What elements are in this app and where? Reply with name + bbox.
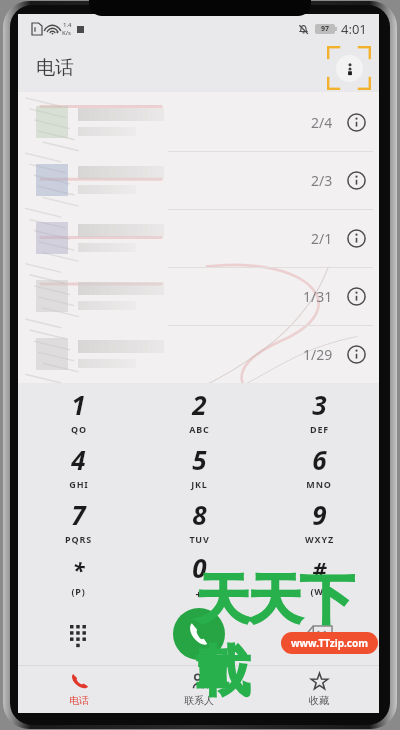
staticText: 9 bbox=[312, 497, 327, 532]
button[interactable]: Call details bbox=[345, 343, 367, 365]
staticText: 2/4 bbox=[311, 113, 333, 132]
button[interactable]: 2/1 bbox=[18, 209, 379, 267]
staticText: 4 bbox=[71, 442, 86, 477]
staticText: 2/1 bbox=[311, 229, 333, 248]
staticText: DEF bbox=[310, 423, 329, 435]
button[interactable]: Keypad bbox=[18, 603, 139, 665]
button[interactable]: Call details bbox=[345, 169, 367, 191]
staticText: JKL bbox=[191, 478, 208, 490]
staticText: WXYZ bbox=[305, 533, 334, 545]
staticText: 6 bbox=[312, 442, 327, 477]
button[interactable]: Call bbox=[139, 603, 259, 665]
button[interactable]: Call details bbox=[345, 111, 367, 133]
staticText: MNO bbox=[306, 478, 332, 490]
button[interactable]: Delete bbox=[259, 603, 379, 665]
button[interactable]: 2/3 bbox=[18, 151, 379, 209]
button[interactable]: 2/4 bbox=[18, 92, 379, 151]
staticText: PQRS bbox=[65, 533, 92, 545]
button[interactable]: 2 bbox=[139, 383, 259, 438]
button[interactable]: Call details bbox=[345, 227, 367, 249]
button[interactable]: 1/31 bbox=[18, 267, 379, 325]
button[interactable]: 3 bbox=[259, 383, 379, 438]
button[interactable]: Call details bbox=[345, 285, 367, 307]
staticText: 2 bbox=[192, 387, 207, 422]
button[interactable]: 1/29 bbox=[18, 325, 379, 383]
staticText: 联系人 bbox=[184, 694, 214, 707]
button[interactable]: 1 bbox=[18, 383, 139, 438]
staticText: 7 bbox=[71, 497, 86, 532]
staticText: 8 bbox=[192, 497, 207, 532]
staticText: 1/29 bbox=[303, 345, 333, 364]
staticText: 5 bbox=[192, 442, 207, 477]
staticText: 97 bbox=[321, 24, 330, 34]
staticText: 电话 bbox=[69, 694, 89, 707]
button[interactable]: 7 bbox=[18, 493, 139, 548]
staticText: 收藏 bbox=[309, 694, 329, 707]
staticText: 电话 bbox=[36, 56, 74, 80]
staticText: (P) bbox=[71, 585, 86, 597]
staticText: 0 bbox=[192, 550, 207, 585]
staticText: www.TTzip.com bbox=[291, 636, 368, 650]
button[interactable]: * bbox=[18, 548, 139, 603]
button[interactable]: 联系人 bbox=[139, 666, 259, 713]
button[interactable]: 5 bbox=[139, 438, 259, 493]
staticText: K/s bbox=[62, 29, 72, 37]
button[interactable]: 4 bbox=[18, 438, 139, 493]
button[interactable]: 电话 bbox=[18, 666, 139, 713]
staticText: 天天下載 bbox=[196, 566, 400, 706]
staticText: (W) bbox=[310, 585, 328, 597]
staticText: GHI bbox=[69, 478, 89, 490]
staticText: 3 bbox=[312, 387, 327, 422]
button[interactable]: More options bbox=[327, 46, 371, 90]
button[interactable]: 8 bbox=[139, 493, 259, 548]
staticText: ABC bbox=[189, 423, 210, 435]
button[interactable]: 收藏 bbox=[259, 666, 379, 713]
button[interactable]: 0 bbox=[139, 548, 259, 603]
staticText: 2/3 bbox=[311, 171, 333, 190]
staticText: TUV bbox=[189, 533, 210, 545]
staticText: * bbox=[72, 554, 85, 584]
staticText: 1 bbox=[71, 387, 86, 422]
staticText: + bbox=[195, 586, 203, 601]
button[interactable]: # bbox=[259, 548, 379, 603]
staticText: 4:01 bbox=[341, 20, 367, 38]
staticText: 1.4 bbox=[63, 21, 72, 29]
staticText: # bbox=[312, 554, 327, 584]
staticText: 1/31 bbox=[303, 287, 333, 306]
button[interactable]: 6 bbox=[259, 438, 379, 493]
button[interactable]: 9 bbox=[259, 493, 379, 548]
staticText: QO bbox=[71, 423, 87, 435]
